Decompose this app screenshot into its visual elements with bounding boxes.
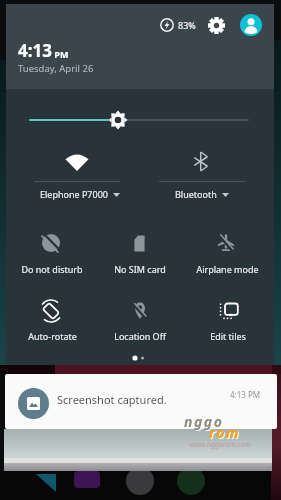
button[interactable] — [142, 145, 262, 205]
staticText: Airplane mode — [196, 263, 259, 275]
staticText: Do not disturb — [21, 263, 83, 275]
button[interactable] — [96, 211, 184, 273]
button[interactable] — [96, 275, 184, 337]
staticText: Location Off — [114, 330, 166, 342]
button[interactable] — [208, 17, 225, 34]
button[interactable]: Screenshot captured. — [5, 374, 277, 429]
button[interactable] — [240, 14, 262, 36]
staticText: Edit tiles — [210, 330, 246, 342]
staticText: 4:13 PM — [230, 389, 261, 400]
staticText: nggo — [184, 412, 224, 431]
button[interactable] — [185, 275, 273, 337]
staticText: Tuesday, April 26 — [18, 62, 94, 75]
staticText: 83% — [178, 19, 196, 31]
staticText: Screenshot captured. — [57, 392, 167, 407]
button[interactable] — [7, 275, 95, 337]
staticText: Auto-rotate — [28, 330, 77, 342]
staticText: Bluetooth — [175, 188, 217, 200]
button[interactable] — [185, 211, 273, 273]
staticText: PM — [52, 48, 69, 60]
staticText: Elephone P7000 — [40, 188, 108, 200]
staticText: 4:13 — [18, 39, 52, 62]
staticText: No SIM card — [114, 263, 166, 275]
button[interactable] — [7, 211, 95, 273]
staticText: www.nggorom.com — [190, 440, 251, 450]
staticText: rom — [209, 423, 240, 442]
button[interactable] — [17, 145, 137, 205]
